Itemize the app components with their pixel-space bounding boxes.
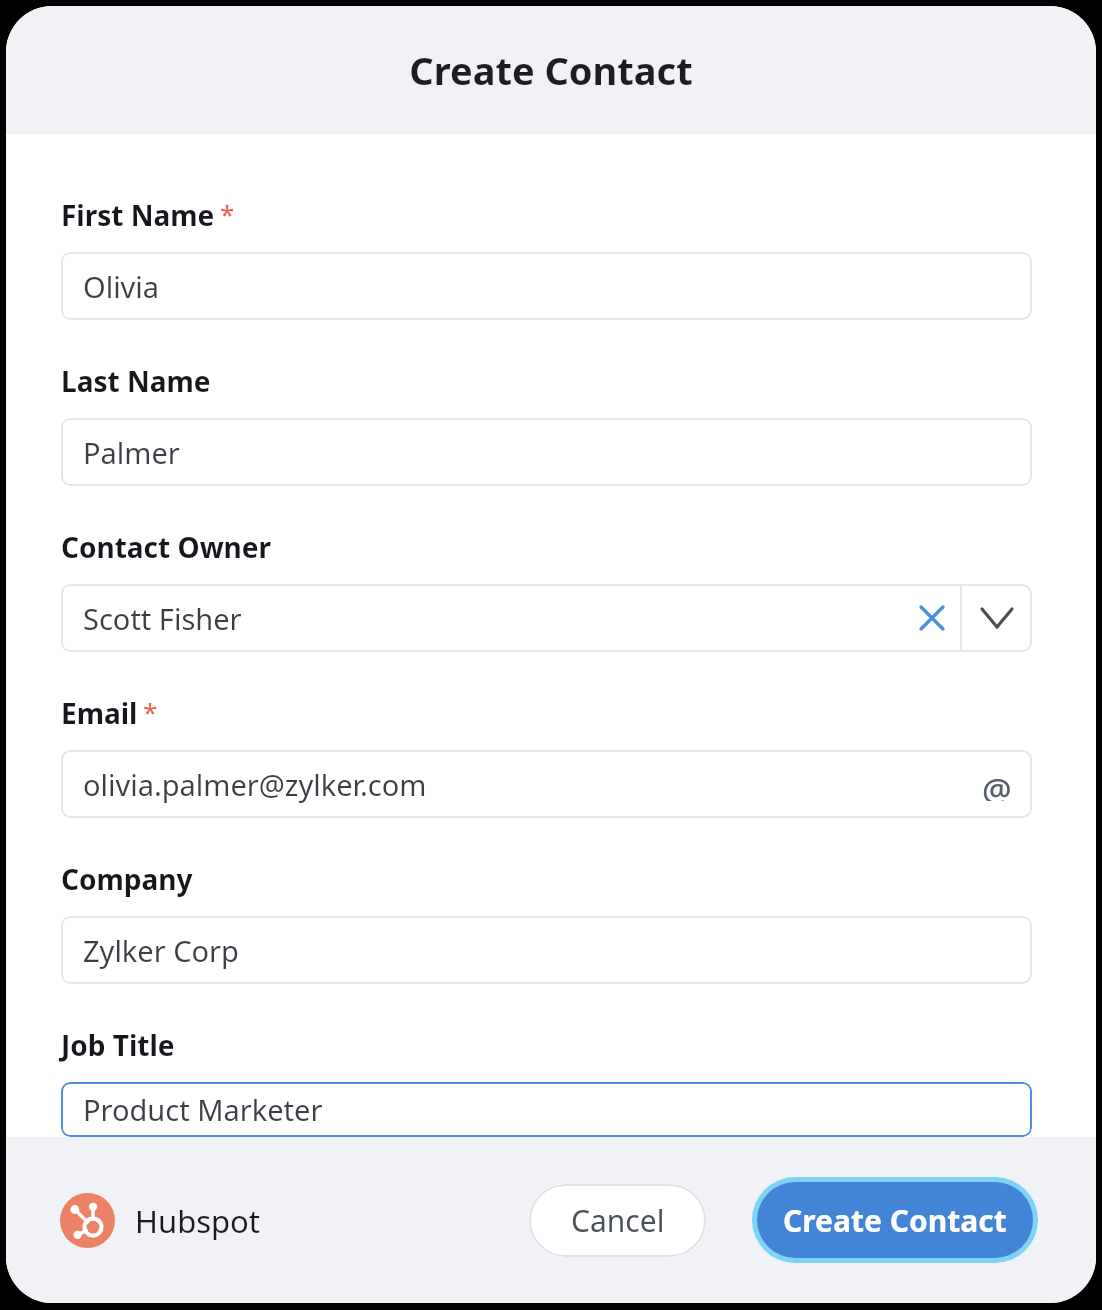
staticText: * (220, 196, 235, 231)
button[interactable]: Zylker Corp (61, 916, 1032, 984)
button[interactable]: Clear (904, 584, 960, 652)
staticText: Cancel (571, 1200, 665, 1241)
staticText: Palmer (83, 433, 180, 472)
other: Email (980, 767, 1014, 801)
staticText: Job Title (61, 1026, 175, 1064)
staticText: Product Marketer (83, 1090, 323, 1129)
button[interactable]: olivia.palmer@zylker.com (61, 750, 1032, 818)
staticText: Contact Owner (61, 528, 272, 566)
button[interactable]: Create Contact (757, 1182, 1033, 1258)
staticText: * (143, 694, 158, 729)
button[interactable]: Scott Fisher (61, 584, 904, 652)
staticText: @ (982, 767, 1012, 801)
staticText: Scott Fisher (83, 599, 242, 638)
staticText: Create Contact (409, 44, 693, 96)
staticText: Last Name (61, 362, 211, 400)
other: Hubspot (60, 1193, 115, 1248)
staticText: Olivia (83, 267, 160, 306)
staticText: Hubspot (135, 1200, 261, 1242)
button[interactable]: Olivia (61, 252, 1032, 320)
button[interactable]: Open dropdown (962, 584, 1032, 652)
staticText: Zylker Corp (83, 931, 239, 970)
staticText: Email (61, 694, 138, 732)
button[interactable]: Palmer (61, 418, 1032, 486)
staticText: olivia.palmer@zylker.com (83, 765, 427, 804)
staticText: Create Contact (783, 1200, 1007, 1241)
button[interactable]: Product Marketer (61, 1082, 1032, 1137)
button[interactable]: Hubspot (60, 1193, 261, 1248)
button[interactable]: Cancel (529, 1184, 706, 1257)
staticText: Company (61, 860, 193, 898)
staticText: First Name (61, 196, 215, 234)
